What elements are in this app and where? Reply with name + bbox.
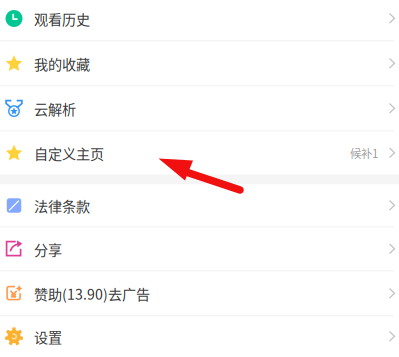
button[interactable]: 自定义主页: [0, 131, 399, 174]
staticText: 法律条款: [34, 195, 90, 216]
staticText: 赞助(13.90)去广告: [34, 283, 150, 304]
button[interactable]: 分享: [0, 227, 399, 270]
button[interactable]: 观看历史: [0, 0, 399, 40]
staticText: 设置: [34, 326, 62, 347]
staticText: 云解析: [34, 98, 76, 119]
staticText: 我的收藏: [34, 53, 90, 74]
button[interactable]: 法律条款: [0, 184, 399, 226]
button[interactable]: 我的收藏: [0, 41, 399, 85]
staticText: 分享: [34, 239, 62, 259]
staticText: 自定义主页: [34, 143, 104, 163]
button[interactable]: 云解析: [0, 86, 399, 130]
button[interactable]: 赞助(13.90)去广告: [0, 271, 399, 315]
staticText: 候补1: [350, 145, 378, 161]
button[interactable]: 设置: [0, 316, 399, 356]
staticText: 观看历史: [34, 8, 90, 29]
